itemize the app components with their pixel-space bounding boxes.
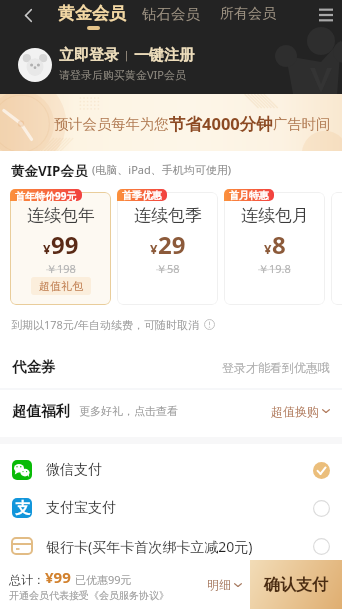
staticText: 黄金VIP会员 (11, 162, 88, 177)
staticText: 登录才能看到优惠哦 (222, 360, 330, 375)
staticText: 广告时间 (273, 115, 331, 133)
staticText: 所有会员 (220, 5, 276, 23)
staticText: 代金券 (12, 358, 56, 376)
staticText: 支付宝支付 (46, 499, 116, 517)
staticText: ¥99 (45, 567, 71, 587)
staticText: 黄金会员 (58, 3, 126, 24)
button[interactable]: 代金券 (0, 353, 342, 381)
button[interactable]: 明细 (199, 577, 250, 592)
staticText: 丨 (121, 49, 132, 63)
staticText: (电脑、iPad、手机均可使用) (92, 162, 232, 177)
staticText: 更多好礼，点击查看 (79, 404, 178, 418)
button[interactable]: 连续包季 (117, 192, 218, 305)
staticText: 超值福利 (12, 402, 70, 420)
staticText: 确认支付 (264, 575, 328, 595)
staticText: 超值礼包 (39, 279, 83, 293)
staticText: 连续包年 (27, 205, 95, 226)
staticText: 请登录后购买黄金VIP会员 (59, 67, 186, 82)
staticText: 明细 (207, 577, 231, 592)
staticText: ¥ (43, 240, 51, 258)
staticText: ￥198 (46, 261, 76, 276)
staticText: 总计： (9, 572, 45, 587)
staticText: 银行卡(买年卡首次绑卡立减20元) (46, 537, 253, 556)
staticText: 已优惠99元 (75, 572, 132, 587)
button[interactable]: 黄金会员 (58, 3, 126, 24)
staticText: 8 (272, 228, 286, 261)
staticText: 预计会员每年为您 (54, 115, 169, 133)
staticText: 支 (15, 499, 30, 518)
button[interactable]: 银行卡(买年卡首次绑卡立减20元) (0, 527, 342, 565)
button[interactable]: 确认支付 (250, 560, 342, 609)
staticText: 立即登录 (59, 46, 119, 65)
staticText: 一键注册 (134, 46, 194, 65)
staticText: 开通会员代表接受《会员服务协议》 (9, 589, 169, 602)
staticText: ¥ (264, 240, 272, 258)
button[interactable]: 支 (0, 489, 342, 527)
staticText: ￥58 (156, 261, 180, 276)
staticText: 连续包季 (134, 205, 202, 226)
staticText: 29 (158, 228, 186, 261)
staticText: 首月特惠 (229, 189, 269, 201)
staticText: ¥ (150, 240, 158, 258)
staticText: 超值换购 (271, 404, 319, 419)
button[interactable]: 超值福利 (0, 397, 342, 425)
staticText: 节省4000分钟 (169, 112, 273, 135)
staticText: 到期以178元/年自动续费，可随时取消 (11, 317, 199, 332)
button[interactable]: Back (14, 0, 42, 30)
staticText: 首季优惠 (122, 189, 162, 201)
button[interactable]: 连续包周 (331, 192, 342, 305)
button[interactable]: Menu (310, 0, 342, 30)
button[interactable]: 所有会员 (220, 5, 276, 23)
button[interactable]: 微信支付 (0, 451, 342, 489)
staticText: 99 (51, 228, 79, 261)
staticText: 钻石会员 (142, 5, 200, 23)
staticText: ￥19.8 (258, 261, 291, 276)
staticText: 微信支付 (46, 461, 102, 479)
staticText: 首年特价99元 (15, 189, 77, 201)
button[interactable]: 连续包月 (224, 192, 325, 305)
button[interactable]: 连续包年 (10, 192, 111, 305)
staticText: 连续包月 (241, 205, 309, 226)
button[interactable]: 钻石会员 (142, 5, 200, 23)
